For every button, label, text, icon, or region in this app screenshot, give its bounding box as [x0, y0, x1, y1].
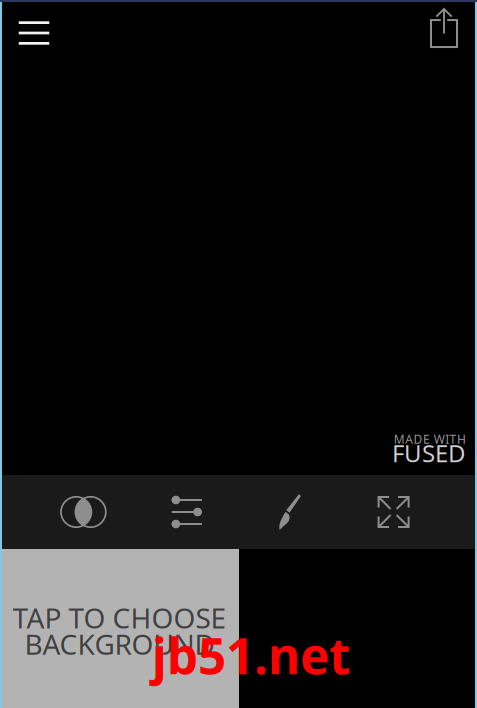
button[interactable]: Brush: [238, 475, 342, 549]
button[interactable]: Adjust: [135, 475, 238, 549]
button[interactable]: Transform: [342, 475, 445, 549]
staticText: FUSED: [392, 437, 466, 469]
staticText: jb51.net: [152, 622, 350, 688]
staticText: BACKGROUND: [24, 625, 214, 662]
button[interactable]: Share: [413, 0, 475, 59]
button[interactable]: TAP TO CHOOSE: [0, 549, 239, 708]
button[interactable]: Blend mode: [32, 475, 135, 549]
staticText: TAP TO CHOOSE: [12, 599, 226, 636]
staticText: MADE WITH: [394, 431, 466, 447]
button[interactable]: Menu: [2, 2, 66, 64]
